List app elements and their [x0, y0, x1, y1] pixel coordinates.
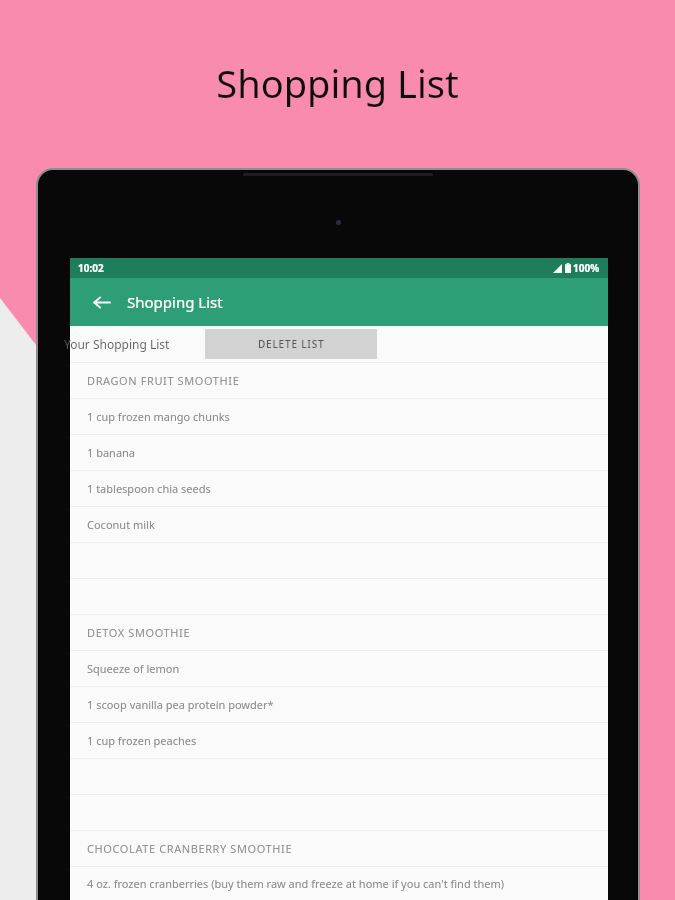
staticText: 1 scoop vanilla pea protein powder* — [87, 697, 274, 712]
button[interactable]: 1 scoop vanilla pea protein powder* — [70, 687, 608, 722]
staticText: 1 tablespoon chia seeds — [87, 481, 211, 496]
button[interactable]: 1 cup frozen mango chunks — [70, 399, 608, 434]
staticText: DETOX SMOOTHIE — [87, 625, 191, 640]
button[interactable]: 1 banana — [70, 435, 608, 470]
button[interactable]: DRAGON FRUIT SMOOTHIE — [70, 363, 608, 398]
staticText: 100% — [573, 261, 600, 275]
button[interactable]: DELETE LIST — [205, 329, 377, 359]
staticText: 1 cup frozen peaches — [87, 733, 197, 748]
button[interactable]: 1 cup frozen peaches — [70, 723, 608, 758]
staticText: CHOCOLATE CRANBERRY SMOOTHIE — [87, 841, 293, 856]
staticText: Your Shopping List — [64, 336, 170, 352]
staticText: Squeeze of lemon — [87, 661, 180, 676]
staticText: Shopping List — [216, 57, 459, 109]
button[interactable]: DETOX SMOOTHIE — [70, 615, 608, 650]
staticText: 4 oz. frozen cranberries (buy them raw a… — [87, 876, 505, 891]
button[interactable]: 1 tablespoon chia seeds — [70, 471, 608, 506]
staticText: 1 banana — [87, 445, 136, 460]
button[interactable]: Coconut milk — [70, 507, 608, 542]
staticText: Coconut milk — [87, 517, 155, 532]
button[interactable]: 4 oz. frozen cranberries (buy them raw a… — [70, 867, 608, 900]
button[interactable]: Squeeze of lemon — [70, 651, 608, 686]
staticText: DELETE LIST — [258, 337, 325, 351]
staticText: Shopping List — [127, 292, 223, 312]
staticText: 10:02 — [78, 261, 104, 275]
staticText: DRAGON FRUIT SMOOTHIE — [87, 373, 240, 388]
staticText: 1 cup frozen mango chunks — [87, 409, 230, 424]
button[interactable]: CHOCOLATE CRANBERRY SMOOTHIE — [70, 831, 608, 866]
button[interactable]: Back — [84, 285, 118, 319]
